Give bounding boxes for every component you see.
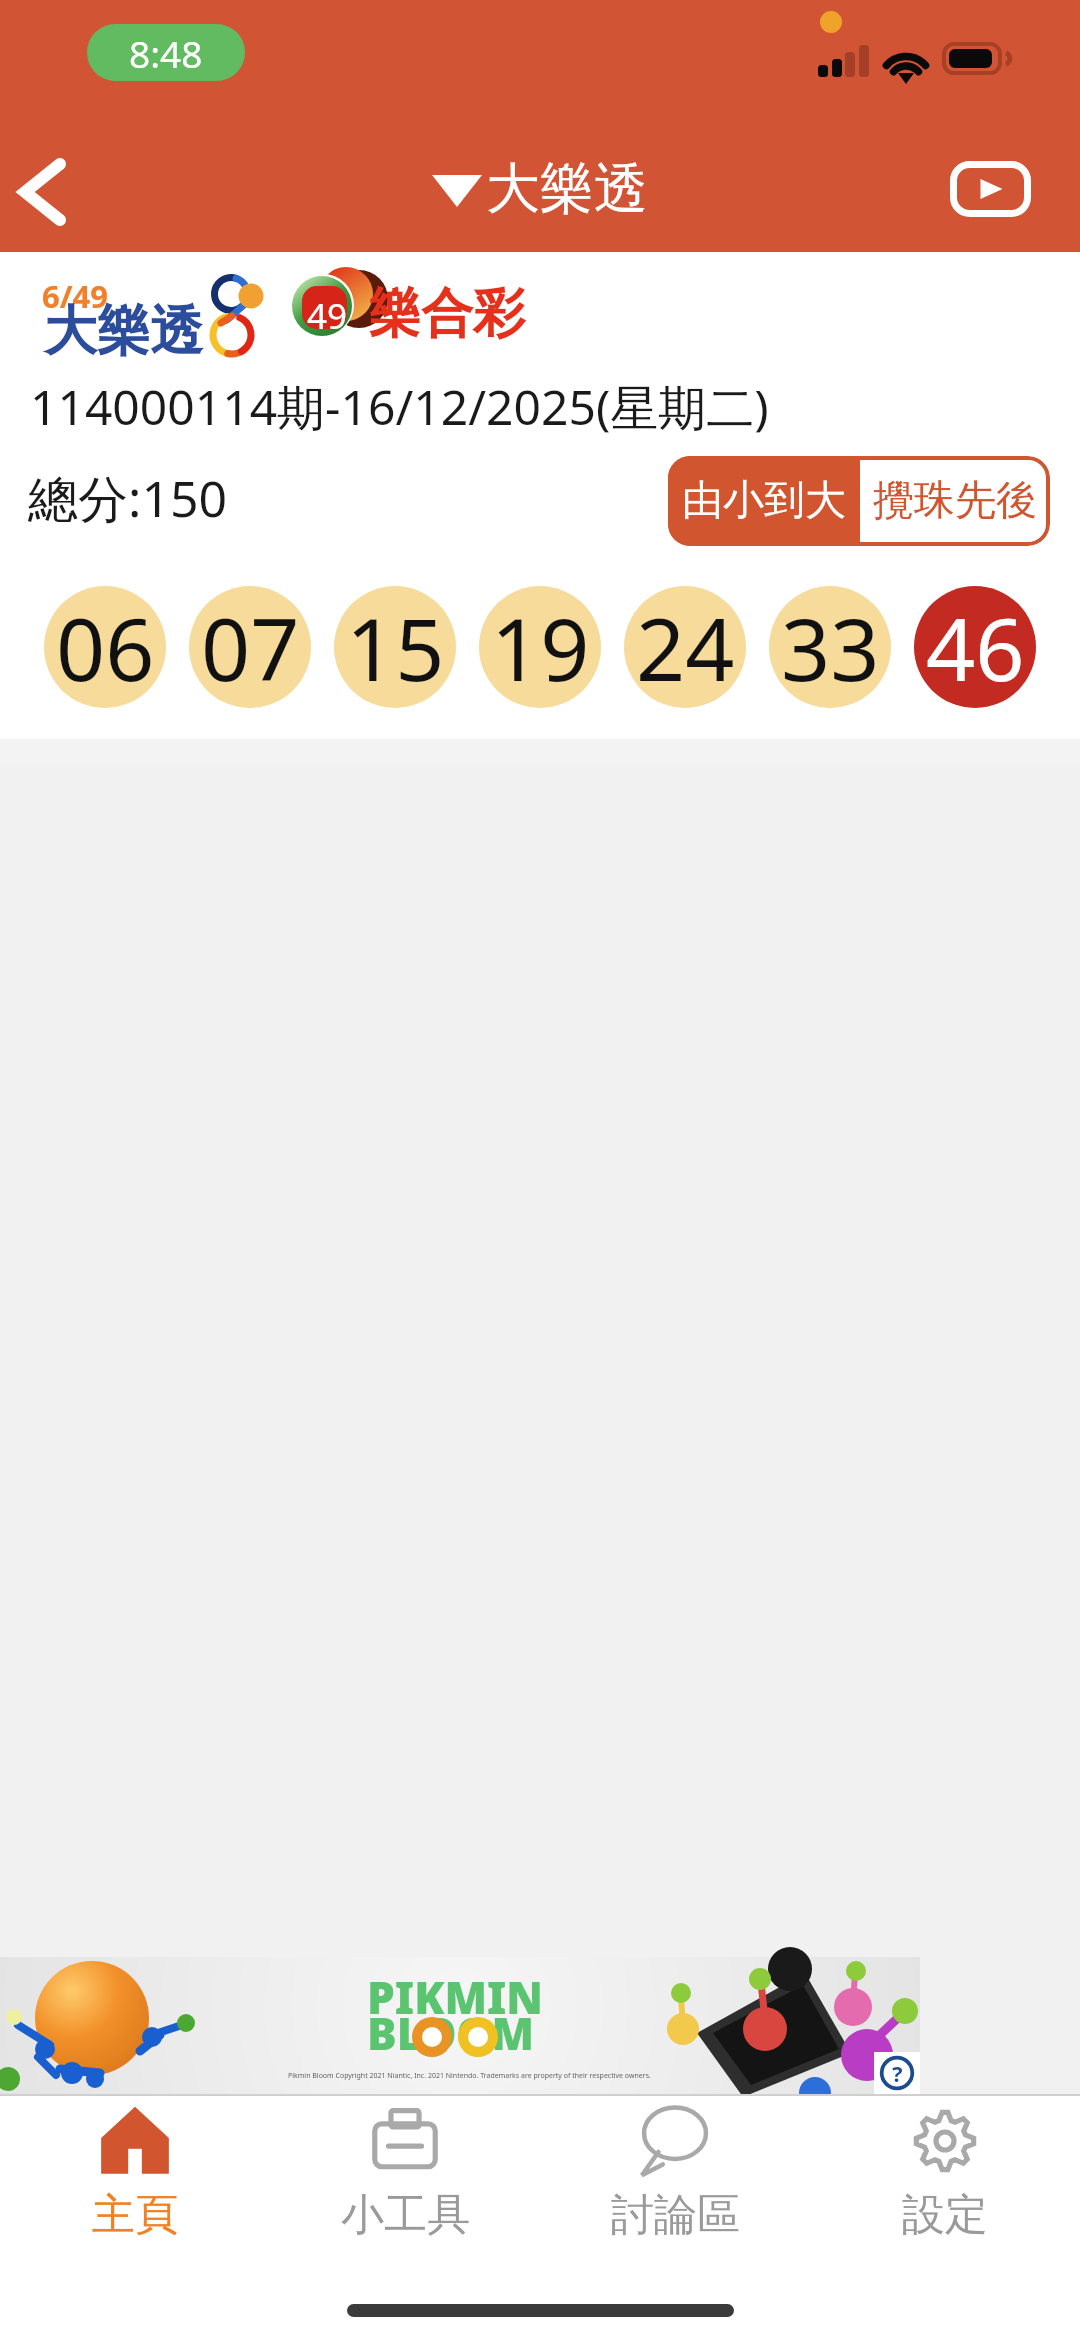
staticText: 設定 bbox=[902, 2188, 988, 2242]
button[interactable]: 小工具 bbox=[270, 2094, 540, 2244]
button[interactable]: 33 bbox=[769, 586, 891, 708]
button[interactable]: Pikmin Bloom advertisement bbox=[0, 1957, 920, 2094]
button[interactable]: YouTube video bbox=[930, 112, 1050, 244]
button[interactable]: 49 bbox=[285, 265, 525, 355]
staticText: BLOOM bbox=[367, 2003, 535, 2063]
staticText: 24 bbox=[636, 589, 735, 706]
staticText: 19 bbox=[491, 589, 590, 706]
button[interactable]: 06 bbox=[44, 586, 166, 708]
button[interactable]: 6/49 bbox=[38, 276, 260, 360]
staticText: Pikmin Bloom Copyright 2021 Niantic, Inc… bbox=[288, 2071, 651, 2081]
button[interactable]: 由小到大 bbox=[668, 456, 860, 546]
staticText: 攪珠先後 bbox=[873, 475, 1037, 527]
button[interactable]: 15 bbox=[334, 586, 456, 708]
staticText: 33 bbox=[781, 589, 880, 706]
staticText: 大樂透 bbox=[44, 298, 203, 365]
button[interactable]: 46 bbox=[914, 586, 1036, 708]
staticText: 主頁 bbox=[92, 2188, 178, 2242]
staticText: 114000114期-16/12/2025(星期二) bbox=[30, 374, 769, 440]
button[interactable]: 設定 bbox=[810, 2094, 1080, 2244]
staticText: 46 bbox=[926, 589, 1025, 706]
staticText: 8:48 bbox=[129, 28, 203, 78]
staticText: 討論區 bbox=[611, 2188, 740, 2242]
button[interactable]: 主頁 bbox=[0, 2094, 270, 2244]
staticText: 大樂透 bbox=[486, 155, 648, 223]
button[interactable]: 大樂透 bbox=[424, 151, 656, 227]
button[interactable]: 19 bbox=[479, 586, 601, 708]
staticText: 樂合彩 bbox=[369, 281, 525, 347]
staticText: PIKMIN bbox=[367, 1967, 543, 2027]
button[interactable]: 討論區 bbox=[540, 2094, 810, 2244]
staticText: 49 bbox=[307, 292, 348, 340]
button[interactable]: 24 bbox=[624, 586, 746, 708]
staticText: 06 bbox=[56, 589, 155, 706]
staticText: 小工具 bbox=[341, 2188, 470, 2242]
button[interactable]: Ad information bbox=[874, 2052, 920, 2094]
staticText: 15 bbox=[346, 589, 445, 706]
staticText: 由小到大 bbox=[682, 475, 846, 527]
button[interactable]: 攪珠先後 bbox=[860, 456, 1050, 546]
staticText: 6/49 bbox=[42, 275, 109, 317]
staticText: ? bbox=[892, 2058, 903, 2088]
staticText: 總分:150 bbox=[28, 464, 228, 532]
button[interactable]: 07 bbox=[189, 586, 311, 708]
button[interactable]: Back bbox=[0, 106, 100, 250]
staticText: 07 bbox=[201, 589, 300, 706]
